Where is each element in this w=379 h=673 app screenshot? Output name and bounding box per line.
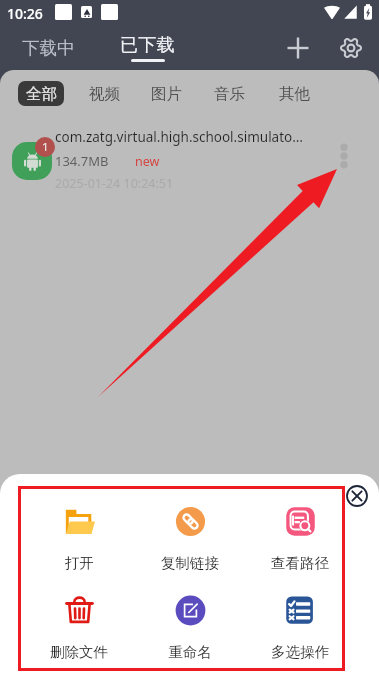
button[interactable]: More options [332,144,356,168]
button[interactable]: 下载中 [8,33,88,63]
staticText: com.zatg.virtual.high.school.simulato… [55,128,335,146]
button[interactable]: 查看路径 [250,500,350,578]
button[interactable]: Add [281,31,315,65]
button[interactable]: 其他 [271,81,317,106]
staticText: 重命名 [168,643,212,661]
button[interactable]: 图片 [143,81,189,106]
button[interactable]: 重命名 [140,589,240,667]
staticText: 1 [42,139,49,155]
button[interactable]: Close [346,485,368,507]
button[interactable]: 音乐 [206,81,252,106]
button[interactable]: 1 [0,117,379,189]
button[interactable]: 多选操作 [250,589,350,667]
button[interactable]: 视频 [81,81,127,106]
staticText: 下载中 [22,37,75,59]
staticText: 其他 [279,84,310,104]
staticText: 复制链接 [161,554,219,572]
button[interactable]: Settings [334,31,368,65]
staticText: 音乐 [214,84,245,104]
button[interactable]: 删除文件 [29,589,129,667]
staticText: 2025-01-24 10:24:51 [55,175,174,192]
staticText: 已下载 [120,33,175,56]
staticText: 多选操作 [271,643,329,661]
staticText: 删除文件 [50,643,108,661]
staticText: 查看路径 [271,554,329,572]
staticText: 图片 [151,84,182,104]
button[interactable]: 全部 [18,81,64,106]
button[interactable]: 已下载 [107,33,187,67]
button[interactable]: 打开 [29,500,129,578]
staticText: 视频 [89,84,120,104]
button[interactable]: 复制链接 [140,500,240,578]
staticText: 134.7MB [55,152,109,170]
staticText: 10:26 [7,4,43,23]
staticText: 全部 [26,84,57,104]
staticText: new [135,153,160,170]
staticText: 打开 [65,554,94,572]
